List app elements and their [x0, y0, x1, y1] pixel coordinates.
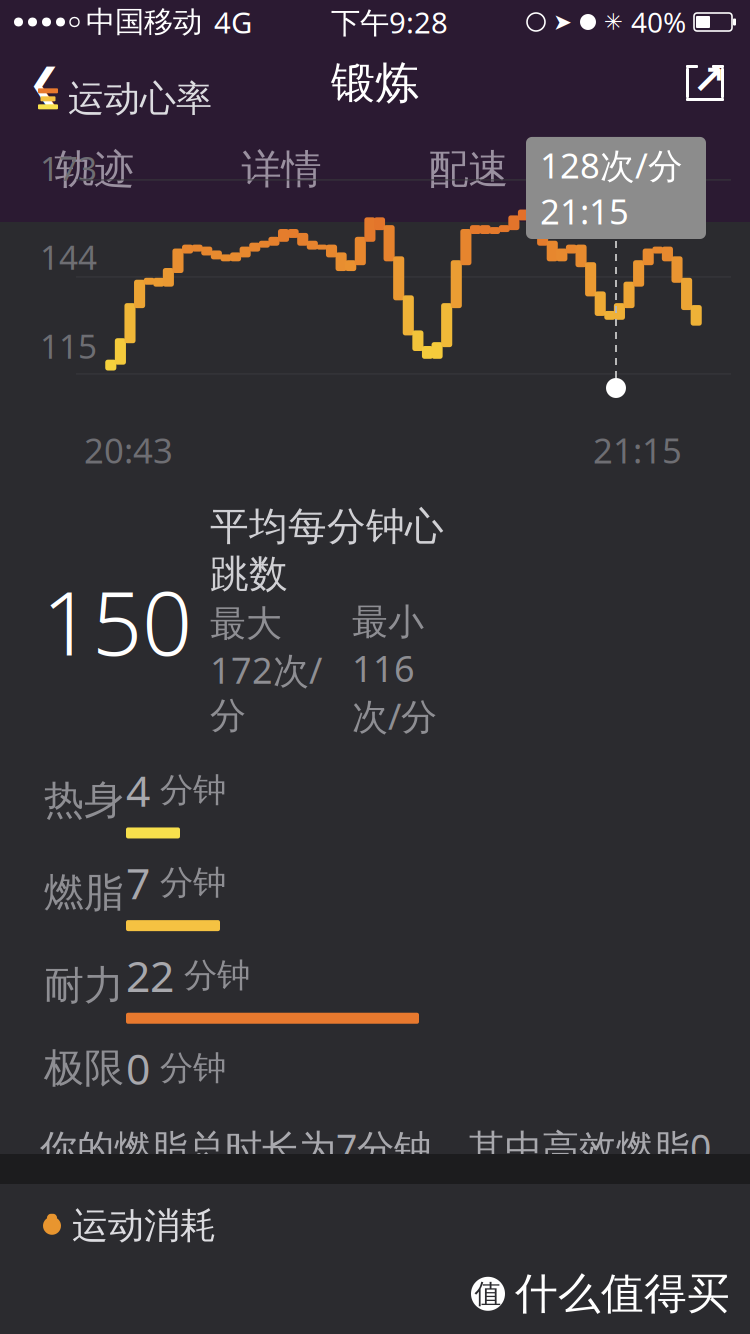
staticText: 锻炼 — [331, 56, 419, 110]
staticText: 详情 — [241, 145, 321, 194]
staticText: ✳ — [604, 9, 623, 35]
staticText: 下午9:28 — [331, 2, 448, 41]
button[interactable]: 轨迹 — [1, 124, 188, 220]
staticText: 最大172次/分 — [210, 602, 322, 738]
staticText: 你的燃脂总时长为7分钟，其中高效燃脂0分钟 — [40, 1122, 711, 1218]
staticText: 值 — [474, 1277, 501, 1310]
staticText: 173 — [40, 146, 97, 190]
staticText: 分钟 — [150, 1048, 226, 1088]
staticText: 什么值得买 — [515, 1268, 730, 1320]
staticText: ↗ — [692, 57, 726, 103]
staticText: 40% — [631, 3, 686, 41]
staticText: 轨迹 — [54, 145, 134, 194]
staticText: 极限 — [44, 1043, 124, 1093]
button[interactable]: 配速 — [375, 124, 562, 220]
staticText: 115 — [40, 324, 97, 368]
staticText: 分钟 — [150, 770, 226, 810]
staticText: 4G — [214, 2, 252, 41]
staticText: 144 — [40, 235, 97, 279]
staticText: 128次/分 21:15 — [540, 142, 692, 234]
staticText: 热身 — [44, 775, 124, 825]
button[interactable]: 返回 — [10, 43, 80, 123]
staticText: 平均每分钟心跳数 — [210, 503, 444, 598]
staticText: ➤ — [553, 9, 572, 35]
staticText: 4 — [126, 762, 150, 818]
staticText: 运动心率 — [68, 77, 212, 121]
staticText: 图表 — [615, 145, 695, 194]
button[interactable]: 详情 — [188, 124, 375, 220]
staticText: 7 — [126, 854, 150, 911]
staticText: 21:15 — [593, 427, 682, 473]
button[interactable]: 分享 — [670, 43, 740, 123]
staticText: 中国移动 — [86, 4, 202, 40]
staticText: 20:43 — [84, 427, 173, 473]
staticText: 分钟 — [150, 862, 226, 903]
staticText: 运动消耗 — [72, 1204, 216, 1248]
staticText: 耐力 — [44, 961, 124, 1010]
staticText: 在燃脂区间持续锻炼20分钟后即进入高效燃脂阶段 — [40, 1222, 711, 1317]
staticText: 最小116次/分 — [352, 600, 437, 740]
button[interactable]: 图表 — [562, 124, 749, 220]
staticText: 燃脂 — [44, 868, 124, 917]
staticText: ❮ — [28, 60, 62, 106]
button[interactable]: 运动消耗 — [0, 1201, 750, 1251]
staticText: 22 — [126, 947, 174, 1004]
staticText: 配速 — [428, 145, 508, 194]
staticText: 分钟 — [174, 955, 250, 996]
staticText: 150 — [42, 563, 192, 680]
staticText: 0 — [126, 1040, 150, 1096]
